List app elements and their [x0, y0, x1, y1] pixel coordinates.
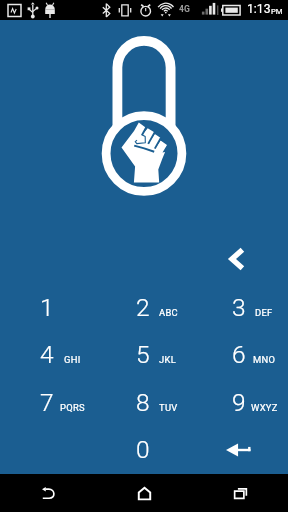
staticText: 6 — [232, 340, 246, 369]
staticText: PM — [271, 7, 283, 16]
button[interactable]: 1 — [0, 284, 96, 331]
button[interactable]: 4 — [0, 331, 96, 378]
staticText: PQRS — [60, 402, 85, 413]
staticText: 7 — [40, 388, 54, 417]
button[interactable]: Delete — [192, 426, 288, 473]
button[interactable]: Home — [96, 474, 192, 512]
staticText: JKL — [159, 354, 177, 365]
button[interactable]: 9 — [192, 379, 288, 426]
staticText: 5 — [136, 340, 150, 369]
staticText: TUV — [159, 402, 178, 413]
staticText: 4 — [40, 340, 54, 369]
staticText: MNO — [253, 354, 276, 365]
staticText: 1:13 — [247, 2, 271, 16]
button[interactable]: Back — [0, 474, 96, 512]
button[interactable]: 8 — [96, 379, 192, 426]
staticText: 8 — [136, 388, 150, 417]
button[interactable]: Back — [216, 235, 264, 283]
staticText: 1 — [40, 293, 54, 322]
staticText: ABC — [159, 307, 178, 318]
button[interactable]: 3 — [192, 284, 288, 331]
button[interactable]: 5 — [96, 331, 192, 378]
staticText: 0 — [136, 435, 150, 464]
button[interactable]: Recent apps — [192, 474, 288, 512]
button[interactable]: 2 — [96, 284, 192, 331]
button[interactable]: 6 — [192, 331, 288, 378]
staticText: DEF — [255, 307, 273, 318]
other: Delete — [192, 426, 288, 473]
staticText: 9 — [232, 388, 246, 417]
staticText: 2 — [136, 293, 150, 322]
staticText: GHI — [64, 354, 81, 365]
staticText: WXYZ — [251, 402, 278, 413]
button[interactable]: 7 — [0, 379, 96, 426]
staticText: 3 — [232, 293, 246, 322]
staticText: 4G — [179, 4, 190, 14]
button[interactable]: 0 — [96, 426, 192, 473]
